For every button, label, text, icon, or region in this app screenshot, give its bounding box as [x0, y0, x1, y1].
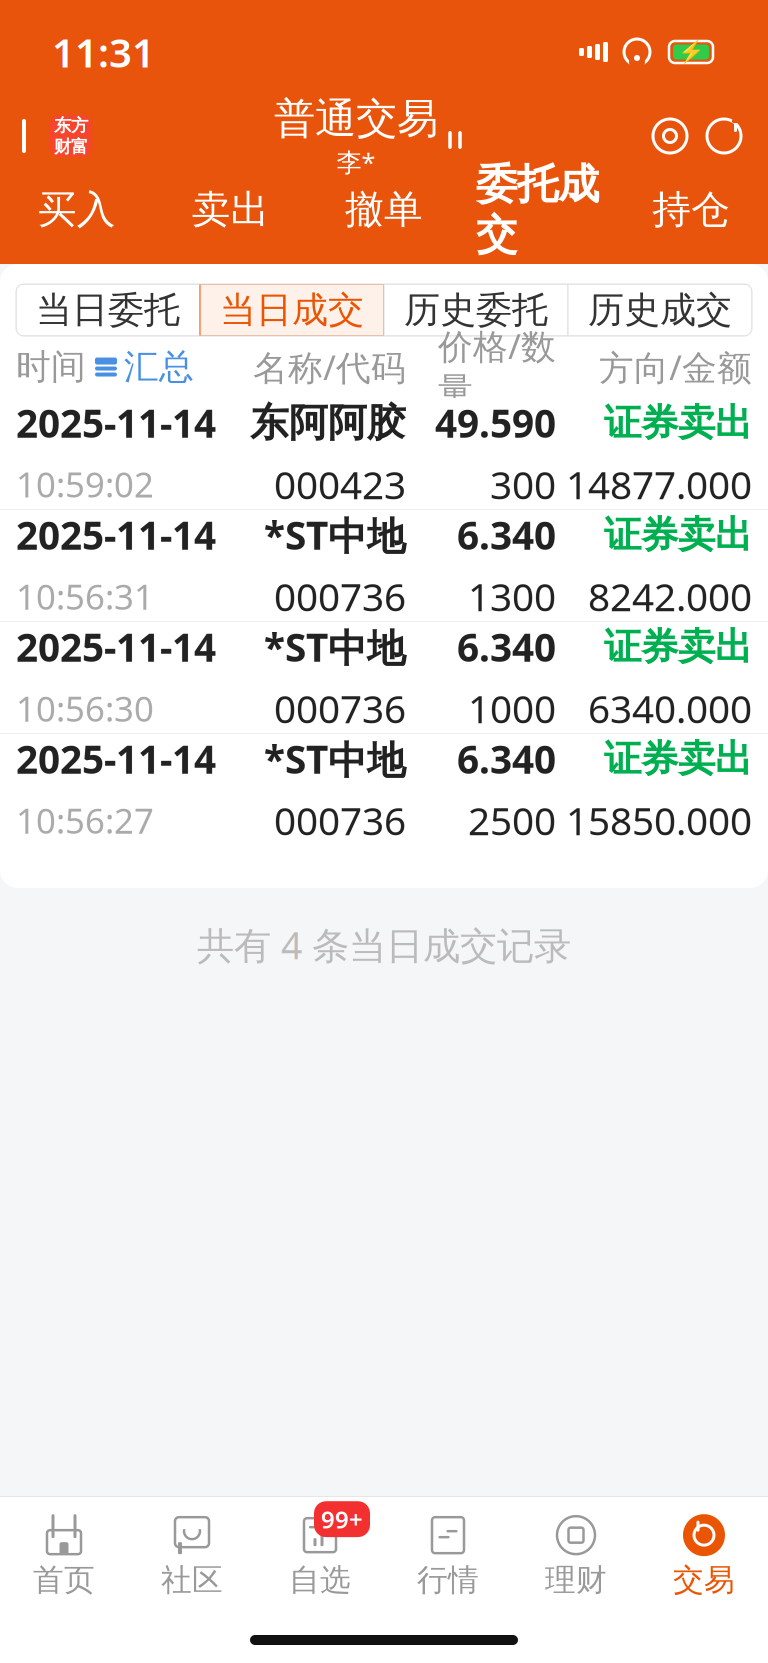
staticText: 2500: [468, 795, 556, 846]
button[interactable]: 理财: [512, 1505, 640, 1607]
staticText: 委托成交: [476, 159, 599, 260]
staticText: 财富: [54, 136, 88, 157]
button[interactable]: 刷新: [704, 116, 744, 156]
staticText: 方向/金额: [599, 344, 752, 390]
staticText: 交易: [673, 1561, 735, 1599]
staticText: 李*: [336, 145, 375, 179]
staticText: 000423: [274, 458, 406, 510]
staticText: 历史成交: [588, 288, 732, 332]
button[interactable]: 行情: [384, 1505, 512, 1607]
button[interactable]: 设置: [650, 116, 690, 156]
staticText: 10:59:02: [16, 461, 154, 507]
staticText: 000736: [274, 571, 406, 622]
button[interactable]: 2025-11-14: [0, 398, 768, 509]
staticText: 卖出: [191, 186, 269, 233]
staticText: 15850.000: [566, 795, 752, 846]
staticText: 2025-11-14: [16, 621, 216, 672]
staticText: 汇总: [124, 346, 194, 388]
staticText: 价格/数量: [438, 323, 556, 411]
staticText: 名称/代码: [253, 344, 406, 390]
staticText: 8242.000: [588, 571, 752, 622]
staticText: ⚡: [677, 40, 704, 64]
staticText: 2025-11-14: [16, 509, 216, 560]
button[interactable]: 2025-11-14: [0, 734, 768, 845]
staticText: 6.340: [457, 621, 556, 672]
button[interactable]: 普通交易: [274, 89, 468, 183]
staticText: 证券卖出: [604, 512, 752, 558]
staticText: 14877.000: [566, 458, 752, 510]
button[interactable]: 卖出: [154, 180, 307, 252]
button[interactable]: 99+: [256, 1505, 384, 1607]
staticText: 自选: [289, 1561, 351, 1599]
button[interactable]: 委托成交: [461, 153, 614, 279]
staticText: 证券卖出: [604, 400, 752, 446]
staticText: 000736: [274, 683, 406, 734]
button[interactable]: 历史委托: [384, 284, 568, 336]
button[interactable]: 持仓: [614, 180, 768, 252]
staticText: 东方: [54, 115, 88, 136]
staticText: 1000: [468, 683, 556, 734]
button[interactable]: 交易: [640, 1505, 768, 1607]
staticText: 99+: [321, 1503, 363, 1535]
button[interactable]: 首页: [0, 1505, 128, 1607]
staticText: 6.340: [457, 509, 556, 560]
staticText: 10:56:30: [16, 685, 154, 731]
button[interactable]: 当日委托: [16, 284, 200, 336]
staticText: 普通交易: [274, 93, 438, 144]
button[interactable]: 返回: [0, 109, 92, 163]
staticText: 共有 4 条当日成交记录: [197, 920, 571, 970]
staticText: 证券卖出: [604, 736, 752, 782]
staticText: 买入: [38, 186, 116, 233]
staticText: 11:31: [52, 25, 155, 78]
staticText: *ST中地: [264, 621, 406, 673]
button[interactable]: 历史成交: [568, 284, 752, 336]
button[interactable]: 买入: [0, 180, 154, 252]
staticText: 300: [490, 458, 556, 510]
staticText: 000736: [274, 795, 406, 846]
staticText: 东阿阿胶: [250, 399, 406, 447]
staticText: 历史委托: [404, 288, 548, 332]
button[interactable]: 2025-11-14: [0, 510, 768, 621]
button[interactable]: 汇总: [94, 346, 194, 388]
button[interactable]: 撤单: [307, 180, 461, 252]
staticText: *ST中地: [264, 733, 406, 785]
staticText: *ST中地: [264, 509, 406, 561]
staticText: 当日委托: [36, 288, 180, 332]
staticText: 6.340: [457, 733, 556, 784]
staticText: 2025-11-14: [16, 733, 216, 784]
button[interactable]: 社区: [128, 1505, 256, 1607]
button[interactable]: 2025-11-14: [0, 622, 768, 733]
staticText: 10:56:27: [16, 797, 154, 843]
staticText: 行情: [417, 1561, 479, 1599]
staticText: 理财: [545, 1561, 607, 1599]
staticText: 持仓: [652, 186, 730, 233]
staticText: 社区: [161, 1561, 223, 1599]
staticText: 当日成交: [220, 288, 364, 332]
button[interactable]: 当日成交: [200, 284, 384, 336]
staticText: 10:56:31: [16, 573, 154, 619]
staticText: 2025-11-14: [16, 397, 216, 448]
staticText: 撤单: [345, 186, 423, 233]
staticText: 首页: [33, 1561, 95, 1599]
staticText: 6340.000: [588, 683, 752, 734]
staticText: 证券卖出: [604, 624, 752, 670]
staticText: 1300: [468, 571, 556, 622]
staticText: 时间: [16, 346, 86, 388]
staticText: 49.590: [435, 397, 556, 448]
